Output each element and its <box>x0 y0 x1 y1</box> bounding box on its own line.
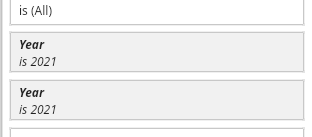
staticText: is (All) <box>19 2 53 18</box>
button[interactable]: Year <box>10 80 304 120</box>
button[interactable]: Year <box>10 32 304 72</box>
staticText: is 2021 <box>19 53 57 69</box>
staticText: Year <box>19 84 45 100</box>
staticText: is 2021 <box>19 101 57 117</box>
button[interactable] <box>10 128 304 137</box>
staticText: Year <box>19 36 45 52</box>
button[interactable]: is (All) <box>10 0 304 25</box>
